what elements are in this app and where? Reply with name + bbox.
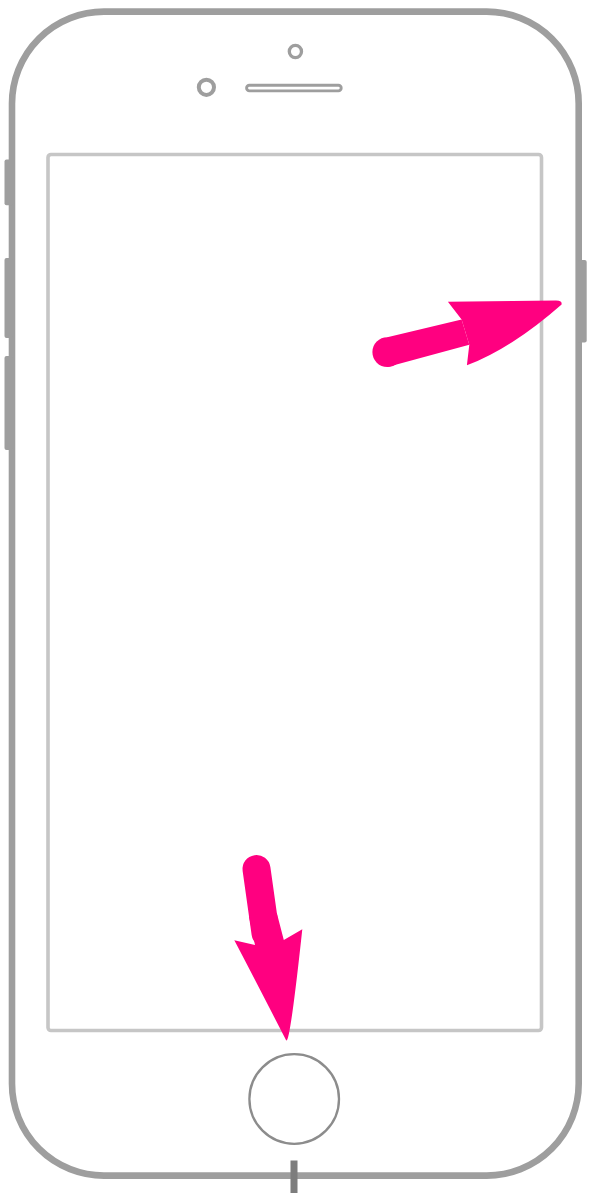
button[interactable]: Volume up [2, 256, 16, 340]
button[interactable]: Home button [248, 1053, 340, 1145]
button[interactable]: Power button [574, 258, 590, 346]
button[interactable]: Phone screen [48, 154, 542, 1031]
button[interactable]: Volume down [2, 354, 16, 452]
button[interactable]: Ringer switch [2, 157, 16, 207]
